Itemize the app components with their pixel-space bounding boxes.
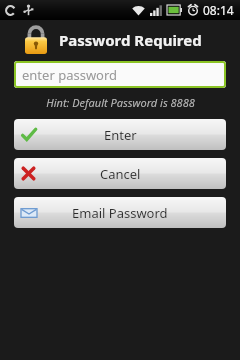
staticText: Enter bbox=[104, 126, 137, 144]
staticText: Hint: Default Password is 8888 bbox=[46, 95, 195, 110]
staticText: Password Required bbox=[59, 30, 202, 50]
staticText: Cancel bbox=[100, 165, 141, 183]
staticText: Email Password bbox=[72, 204, 168, 222]
button[interactable]: Cancel bbox=[14, 158, 226, 189]
button[interactable]: Email Password bbox=[14, 197, 226, 228]
button[interactable]: enter password bbox=[14, 61, 226, 88]
staticText: enter password bbox=[22, 66, 118, 84]
staticText: 08:14 bbox=[203, 2, 234, 18]
button[interactable]: Enter bbox=[14, 119, 226, 150]
